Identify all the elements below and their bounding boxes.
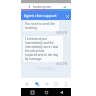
button[interactable]: Home xyxy=(22,79,31,88)
button[interactable]: Home xyxy=(42,88,50,96)
button[interactable]: Close xyxy=(64,13,70,19)
button[interactable]: Recents xyxy=(28,88,36,96)
staticText: immediately and the hotel xyxy=(25,41,61,45)
button[interactable]: Bookings xyxy=(51,79,60,88)
button[interactable]: Back xyxy=(57,88,65,96)
staticText: I contacted you xyxy=(25,37,47,41)
button[interactable]: Send xyxy=(62,4,68,9)
staticText: required and to the day xyxy=(25,53,59,57)
button[interactable]: Saved xyxy=(42,79,51,88)
staticText: by message xyxy=(25,57,42,61)
button[interactable]: Back xyxy=(27,4,32,9)
staticText: booking.com xyxy=(33,5,52,9)
staticText: the job actual xyxy=(25,49,45,53)
staticText: 04:35 PM xyxy=(56,31,68,35)
button[interactable]: Search xyxy=(32,79,41,88)
staticText: immediately since i was xyxy=(25,45,59,49)
button[interactable]: Account xyxy=(61,79,70,88)
staticText: You need to send the xyxy=(25,22,55,26)
staticText: Agent chat support xyxy=(24,13,57,18)
button[interactable]: Agent chat support xyxy=(21,11,71,20)
button[interactable]: You need to send the xyxy=(23,21,59,31)
staticText: booking xyxy=(25,26,37,30)
staticText: 04:35 PM xyxy=(56,62,68,66)
button[interactable]: I contacted you xyxy=(23,36,63,62)
